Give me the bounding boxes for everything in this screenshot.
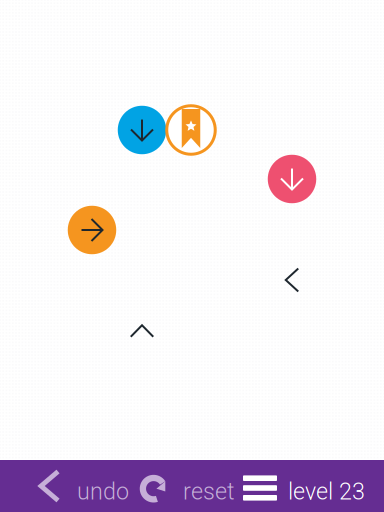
- staticText: level 23: [288, 478, 365, 505]
- button[interactable]: reset: [135, 460, 237, 512]
- staticText: undo: [77, 478, 129, 505]
- button[interactable]: Pink tile, move down: [268, 155, 316, 203]
- button[interactable]: level 23: [237, 460, 381, 512]
- staticText: reset: [183, 478, 235, 505]
- button[interactable]: undo: [0, 460, 135, 512]
- button[interactable]: Goal tile: [167, 106, 215, 154]
- button[interactable]: Orange tile, move right: [68, 206, 116, 254]
- button[interactable]: Blue tile, move down: [118, 106, 166, 154]
